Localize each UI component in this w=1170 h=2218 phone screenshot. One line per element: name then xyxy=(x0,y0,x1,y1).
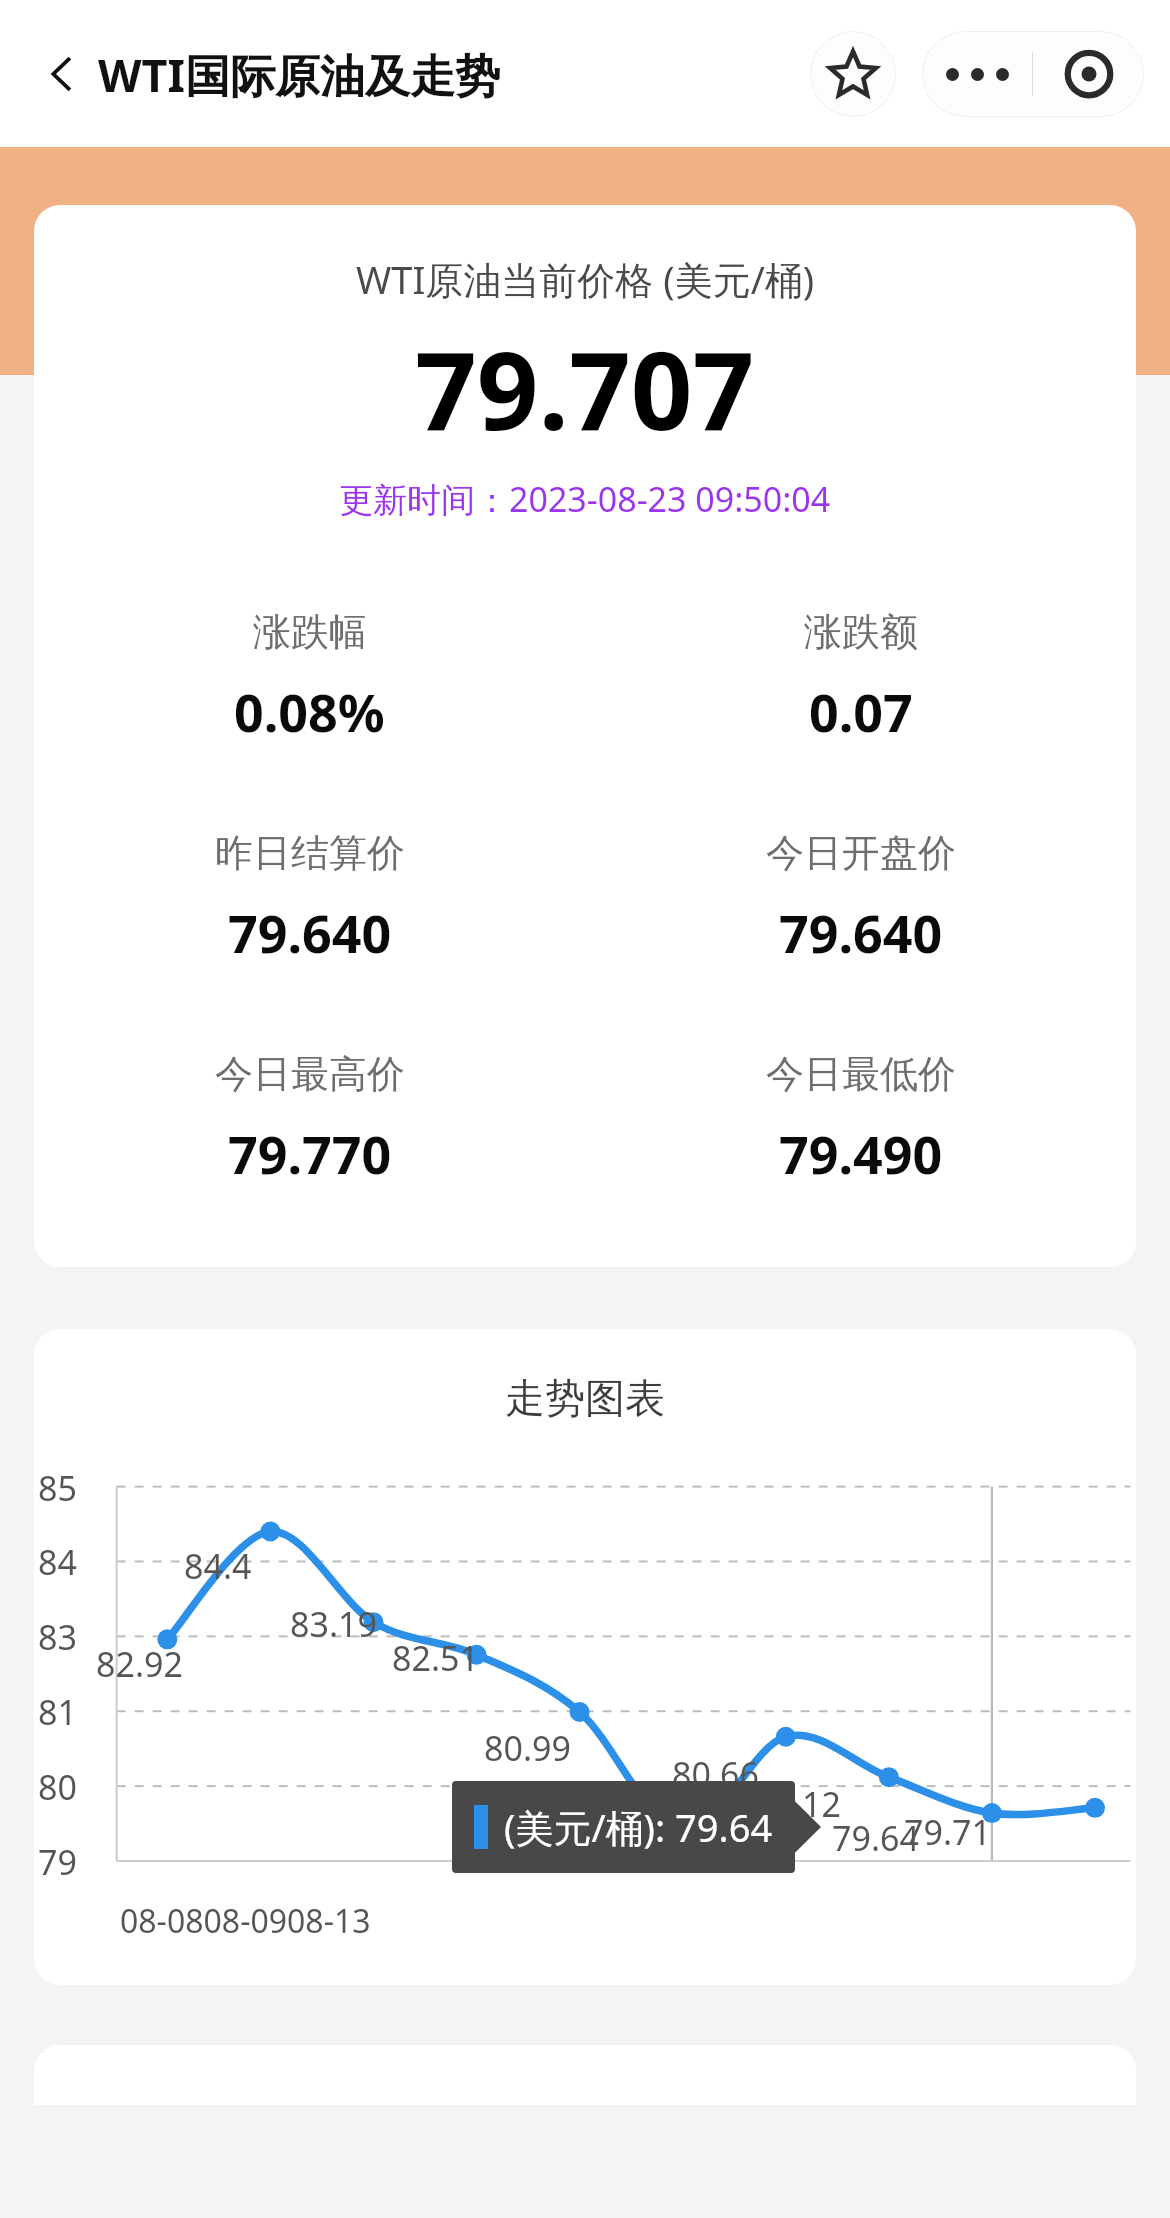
button[interactable]: 今日最低价 xyxy=(585,1050,1136,1189)
staticText: 0.08% xyxy=(234,676,385,747)
staticText: 84 xyxy=(38,1539,77,1585)
staticText: 83 xyxy=(38,1614,77,1660)
staticText: 涨跌额 xyxy=(804,608,918,656)
staticText: 79.71 xyxy=(904,1809,991,1855)
staticText: 79.64 xyxy=(832,1815,919,1861)
staticText: 今日最低价 xyxy=(766,1050,956,1098)
button[interactable]: More options xyxy=(922,31,1032,117)
staticText: 80.66 xyxy=(672,1751,759,1797)
staticText: 82.92 xyxy=(96,1641,183,1687)
button[interactable]: 今日最高价 xyxy=(34,1050,585,1189)
staticText: 79.640 xyxy=(228,897,392,968)
button[interactable]: 走势图表 xyxy=(34,1329,1136,1985)
staticText: (美元/桶): 79.64 xyxy=(504,1801,773,1853)
staticText: 0.07 xyxy=(809,676,913,747)
button[interactable]: Back xyxy=(30,42,94,106)
staticText: 涨跌幅 xyxy=(253,608,367,656)
staticText: 80 xyxy=(38,1764,77,1810)
staticText: 79.707 xyxy=(415,315,755,462)
button[interactable]: Close mini program xyxy=(1033,31,1144,117)
staticText: 79.38 xyxy=(572,1815,659,1861)
button[interactable]: 涨跌额 xyxy=(585,608,1136,747)
staticText: 更新时间：2023-08-23 09:50:04 xyxy=(339,476,831,522)
button[interactable]: Favorite xyxy=(810,31,896,117)
staticText: 79 xyxy=(38,1839,77,1885)
button[interactable]: 今日开盘价 xyxy=(585,829,1136,968)
staticText: WTI国际原油及走势 xyxy=(98,44,500,105)
staticText: 83.19 xyxy=(290,1601,377,1647)
staticText: 08-0808-0908-13 xyxy=(120,1899,371,1943)
staticText: 今日开盘价 xyxy=(766,829,956,877)
staticText: 今日最高价 xyxy=(215,1050,405,1098)
staticText: 79.770 xyxy=(228,1118,392,1189)
staticText: 79.640 xyxy=(779,897,943,968)
staticText: 昨日结算价 xyxy=(215,829,405,877)
staticText: 85 xyxy=(38,1465,77,1511)
staticText: 82.51 xyxy=(392,1635,479,1681)
button[interactable]: WTI原油当前价格 (美元/桶) xyxy=(34,205,1136,1267)
staticText: 80.99 xyxy=(484,1725,571,1771)
button[interactable]: 涨跌幅 xyxy=(34,608,585,747)
staticText: 走势图表 xyxy=(34,1373,1136,1423)
button[interactable]: 昨日结算价 xyxy=(34,829,585,968)
staticText: 84.4 xyxy=(184,1543,252,1589)
staticText: 81 xyxy=(38,1689,77,1735)
staticText: 80.12 xyxy=(754,1781,841,1827)
staticText: WTI原油当前价格 (美元/桶) xyxy=(356,253,815,305)
staticText: 79.490 xyxy=(779,1118,943,1189)
